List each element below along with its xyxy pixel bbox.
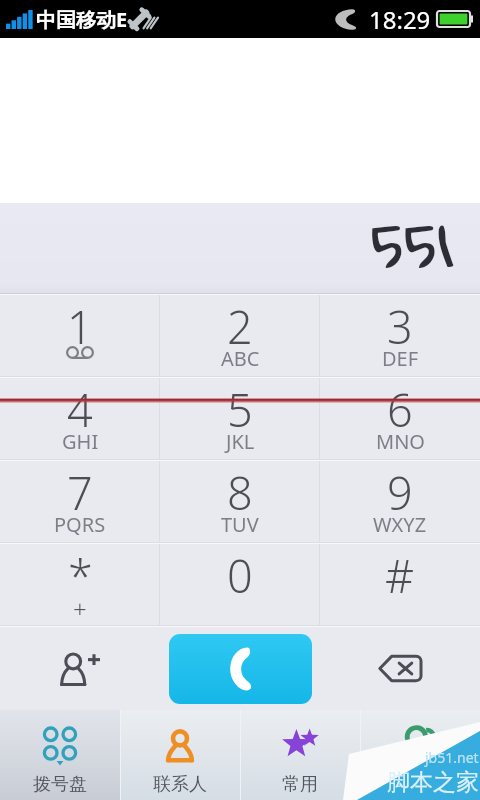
staticText: # bbox=[385, 545, 415, 606]
staticText: MNO bbox=[376, 428, 425, 455]
staticText: 拨号盘 bbox=[33, 773, 87, 796]
button[interactable]: * bbox=[0, 544, 160, 625]
staticText: 3 bbox=[387, 296, 413, 357]
staticText: 8 bbox=[227, 462, 253, 523]
staticText: * bbox=[68, 545, 93, 606]
staticText: GHI bbox=[62, 428, 99, 455]
button[interactable]: 6 bbox=[320, 378, 480, 459]
button[interactable]: 联系人 bbox=[120, 710, 240, 800]
button[interactable]: 7 bbox=[0, 461, 160, 542]
button[interactable]: # bbox=[320, 544, 480, 625]
staticText: 551 bbox=[371, 192, 454, 282]
staticText: JKL bbox=[226, 428, 255, 455]
staticText: 6 bbox=[387, 379, 413, 440]
button[interactable]: 3 bbox=[320, 295, 480, 376]
staticText: jb51.net bbox=[425, 748, 479, 767]
staticText: + bbox=[73, 592, 87, 623]
staticText: TUV bbox=[221, 511, 259, 538]
button[interactable]: 常用 bbox=[240, 710, 360, 800]
button[interactable]: Delete bbox=[320, 627, 480, 710]
button[interactable]: 9 bbox=[320, 461, 480, 542]
staticText: 脚本之家 bbox=[387, 768, 479, 797]
button[interactable]: 2 bbox=[160, 295, 320, 376]
button[interactable]: 4 bbox=[0, 378, 160, 459]
staticText: 7 bbox=[67, 462, 93, 523]
button[interactable]: 1 bbox=[0, 295, 160, 376]
staticText: 中国移动E bbox=[36, 6, 128, 33]
button[interactable]: 0 bbox=[160, 544, 320, 625]
staticText: 9 bbox=[387, 462, 413, 523]
staticText: PQRS bbox=[54, 511, 106, 538]
staticText: 18:29 bbox=[369, 3, 431, 36]
staticText: 2 bbox=[227, 296, 253, 357]
button[interactable]: 5 bbox=[160, 378, 320, 459]
staticText: ABC bbox=[221, 345, 260, 372]
staticText: 联系人 bbox=[153, 773, 207, 796]
staticText: 5 bbox=[227, 379, 253, 440]
button[interactable]: 8 bbox=[160, 461, 320, 542]
button[interactable]: Recent calls bbox=[360, 710, 480, 800]
button[interactable]: Add contact bbox=[0, 627, 160, 710]
button[interactable]: 拨号盘 bbox=[0, 710, 120, 800]
staticText: 4 bbox=[67, 379, 93, 440]
button[interactable]: Call bbox=[169, 634, 312, 704]
staticText: 0 bbox=[227, 545, 253, 606]
staticText: 1 bbox=[67, 296, 93, 357]
staticText: DEF bbox=[382, 345, 419, 372]
staticText: WXYZ bbox=[373, 511, 427, 538]
staticText: 常用 bbox=[282, 773, 318, 796]
